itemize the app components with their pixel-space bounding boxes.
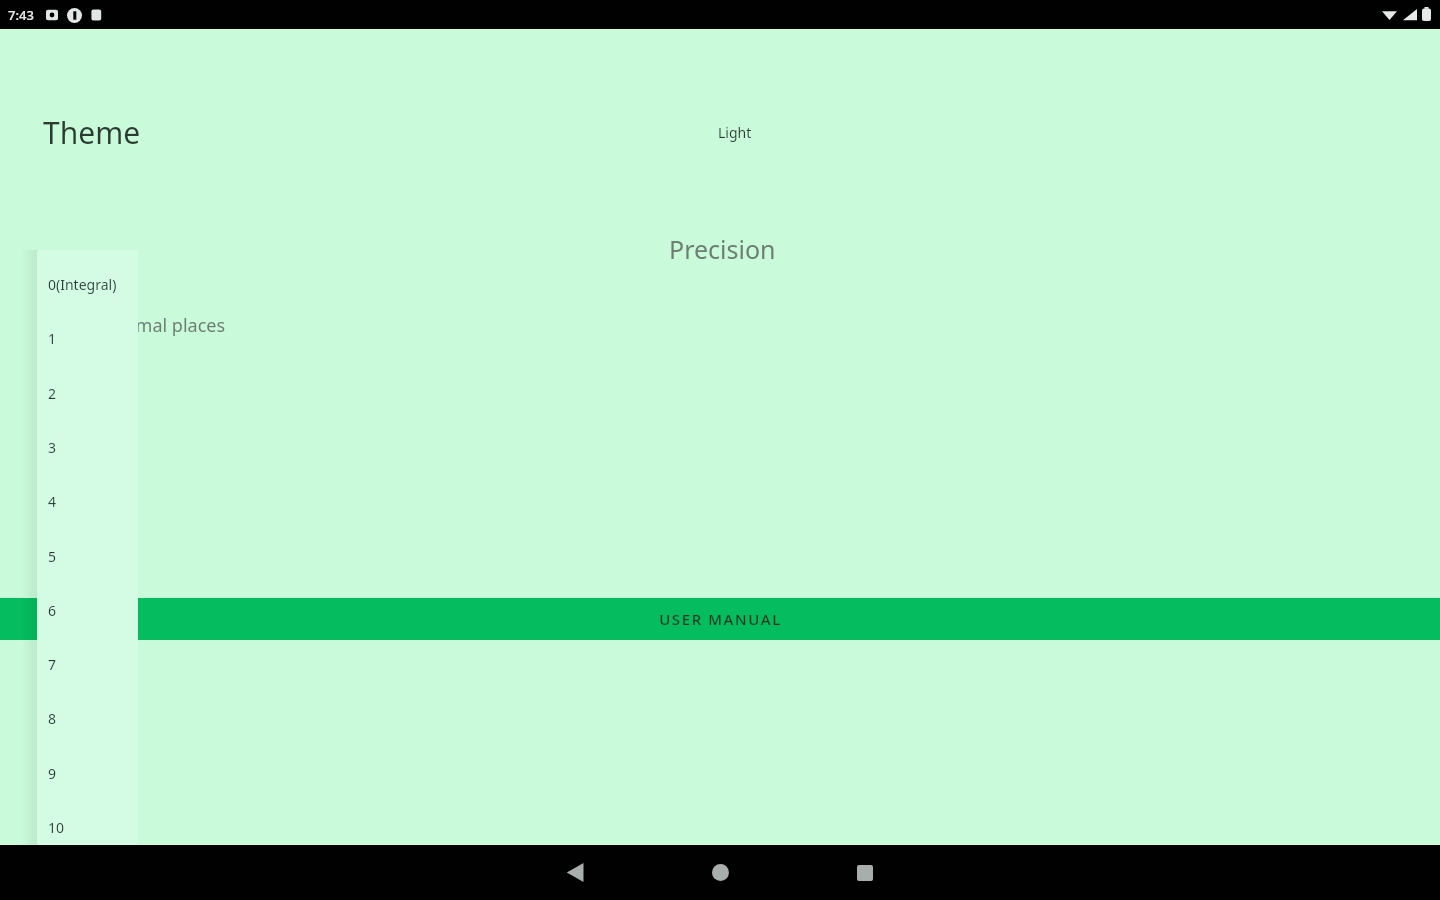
staticText: 0(Integral): [48, 275, 117, 294]
button[interactable]: 1: [37, 311, 138, 365]
button[interactable]: 6: [37, 583, 138, 637]
staticText: 10: [48, 818, 65, 837]
staticText: 7: [48, 655, 57, 674]
staticText: 3: [48, 438, 57, 457]
button[interactable]: Decimal places: [99, 313, 226, 338]
button[interactable]: Home: [685, 845, 755, 900]
button[interactable]: Light: [718, 123, 752, 142]
staticText: 2: [48, 384, 57, 403]
button[interactable]: 10: [37, 800, 138, 845]
staticText: 1: [48, 329, 57, 348]
button[interactable]: 8: [37, 691, 138, 745]
button[interactable]: USER MANUAL: [0, 598, 1440, 640]
button[interactable]: 9: [37, 746, 138, 800]
button[interactable]: Recent apps: [830, 845, 900, 900]
staticText: 7:43: [8, 6, 34, 24]
button[interactable]: 2: [37, 366, 138, 420]
button[interactable]: 0(Integral): [37, 257, 138, 311]
button[interactable]: Theme: [43, 112, 141, 153]
staticText: 9: [48, 764, 57, 783]
button[interactable]: Back: [540, 845, 610, 900]
staticText: 5: [48, 547, 57, 566]
staticText: USER MANUAL: [659, 609, 782, 629]
staticText: 6: [48, 601, 57, 620]
button[interactable]: 7: [37, 637, 138, 691]
staticText: Precision: [669, 232, 776, 266]
button[interactable]: 5: [37, 529, 138, 583]
staticText: 8: [48, 709, 57, 728]
button[interactable]: 3: [37, 420, 138, 474]
staticText: 4: [48, 492, 57, 511]
button[interactable]: 4: [37, 474, 138, 528]
